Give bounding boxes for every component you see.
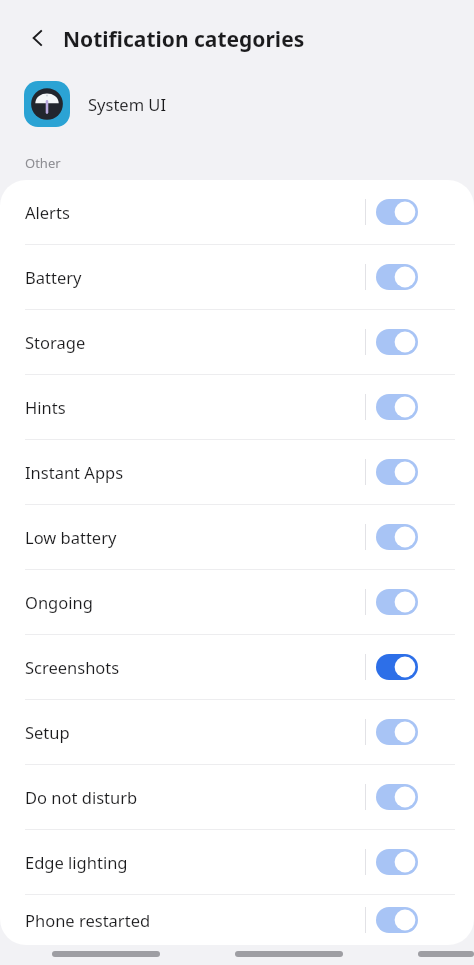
- button[interactable]: Storage: [0, 310, 474, 374]
- staticText: Other: [25, 154, 61, 172]
- button[interactable]: Off: [376, 784, 418, 810]
- button[interactable]: Do not disturb: [0, 765, 474, 829]
- staticText: Do not disturb: [25, 786, 365, 808]
- button[interactable]: Edge lighting: [0, 830, 474, 894]
- button[interactable]: On: [376, 654, 418, 680]
- button[interactable]: Off: [376, 394, 418, 420]
- button[interactable]: Hints: [0, 375, 474, 439]
- staticText: Storage: [25, 331, 365, 353]
- staticText: Notification categories: [63, 25, 305, 54]
- button[interactable]: System UI: [0, 78, 474, 130]
- staticText: Alerts: [25, 201, 365, 223]
- button[interactable]: Off: [376, 849, 418, 875]
- button[interactable]: Off: [376, 589, 418, 615]
- staticText: Phone restarted: [25, 909, 365, 931]
- button[interactable]: Back: [18, 18, 58, 58]
- button[interactable]: Off: [376, 524, 418, 550]
- staticText: Battery: [25, 266, 365, 288]
- button[interactable]: Ongoing: [0, 570, 474, 634]
- button[interactable]: Phone restarted: [0, 895, 474, 945]
- staticText: System UI: [88, 93, 167, 115]
- staticText: Setup: [25, 721, 365, 743]
- button[interactable]: Off: [376, 199, 418, 225]
- button[interactable]: Battery: [0, 245, 474, 309]
- button[interactable]: Off: [376, 719, 418, 745]
- button[interactable]: Instant Apps: [0, 440, 474, 504]
- button[interactable]: Off: [376, 907, 418, 933]
- staticText: Ongoing: [25, 591, 365, 613]
- button[interactable]: Back: [418, 944, 474, 964]
- button[interactable]: Alerts: [0, 180, 474, 244]
- staticText: Instant Apps: [25, 461, 365, 483]
- button[interactable]: Recents: [52, 944, 160, 964]
- button[interactable]: Off: [376, 329, 418, 355]
- button[interactable]: Screenshots: [0, 635, 474, 699]
- staticText: Hints: [25, 396, 365, 418]
- staticText: Low battery: [25, 526, 365, 548]
- button[interactable]: Home: [235, 944, 343, 964]
- button[interactable]: Off: [376, 459, 418, 485]
- button[interactable]: Setup: [0, 700, 474, 764]
- staticText: Edge lighting: [25, 851, 365, 873]
- staticText: Screenshots: [25, 656, 365, 678]
- button[interactable]: Off: [376, 264, 418, 290]
- button[interactable]: Low battery: [0, 505, 474, 569]
